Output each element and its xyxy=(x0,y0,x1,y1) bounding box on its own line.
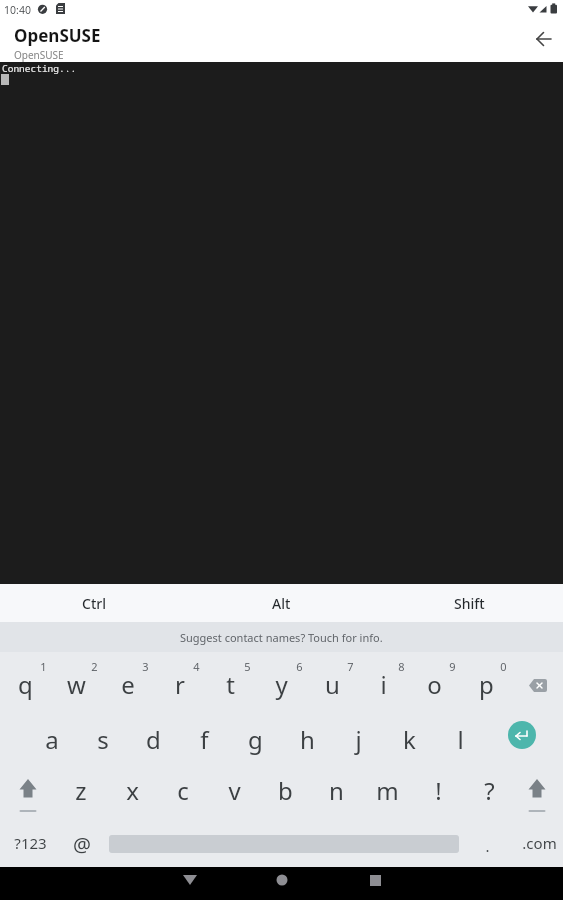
staticText: y xyxy=(275,668,288,701)
staticText: z xyxy=(75,774,87,807)
button[interactable]: z xyxy=(56,764,106,816)
staticText: 9 xyxy=(449,659,456,674)
button[interactable]: v xyxy=(209,764,259,816)
staticText: u xyxy=(325,668,340,701)
staticText: o xyxy=(427,668,442,701)
button[interactable]: e xyxy=(102,658,153,710)
staticText: n xyxy=(329,774,344,807)
staticText: f xyxy=(200,723,209,756)
button[interactable]: y xyxy=(256,658,307,710)
staticText: p xyxy=(479,668,494,701)
staticText: Suggest contact names? Touch for info. xyxy=(180,630,383,645)
button[interactable]: . xyxy=(472,826,502,866)
button[interactable]: l xyxy=(435,713,486,765)
staticText: 2 xyxy=(91,659,98,674)
button[interactable]: j xyxy=(333,713,384,765)
button[interactable]: u xyxy=(307,658,358,710)
staticText: ?123 xyxy=(14,833,47,853)
button[interactable]: c xyxy=(158,764,208,816)
staticText: 6 xyxy=(296,659,303,674)
staticText: 3 xyxy=(142,659,149,674)
button[interactable]: n xyxy=(311,764,361,816)
button[interactable]: Suggest contact names? Touch for info. xyxy=(0,622,563,652)
staticText: c xyxy=(177,774,189,807)
button[interactable] xyxy=(512,766,562,814)
staticText: 7 xyxy=(347,659,354,674)
staticText: d xyxy=(146,723,161,756)
staticText: 5 xyxy=(244,659,251,674)
button[interactable] xyxy=(258,867,306,893)
button[interactable]: @ xyxy=(57,819,107,869)
staticText: j xyxy=(355,723,362,756)
staticText: . xyxy=(485,836,490,856)
staticText: x xyxy=(126,774,139,807)
button[interactable]: t xyxy=(205,658,256,710)
staticText: 1 xyxy=(40,659,47,674)
button[interactable]: i xyxy=(358,658,409,710)
button[interactable]: s xyxy=(77,713,128,765)
staticText: 8 xyxy=(398,659,405,674)
staticText: w xyxy=(67,668,86,701)
button[interactable]: Shift xyxy=(375,584,563,622)
staticText: OpenSUSE xyxy=(14,48,64,62)
staticText: ? xyxy=(484,774,495,807)
button[interactable] xyxy=(166,867,214,893)
staticText: Shift xyxy=(454,594,485,613)
staticText: m xyxy=(376,774,399,807)
button[interactable]: h xyxy=(282,713,333,765)
staticText: Ctrl xyxy=(82,594,106,613)
staticText: k xyxy=(403,723,416,756)
button[interactable]: d xyxy=(128,713,179,765)
staticText: v xyxy=(228,774,241,807)
staticText: Connecting... xyxy=(2,62,77,75)
staticText: s xyxy=(97,723,109,756)
staticText: e xyxy=(121,668,135,701)
button[interactable] xyxy=(508,721,536,749)
button[interactable] xyxy=(528,23,560,55)
button[interactable]: g xyxy=(230,713,281,765)
staticText: OpenSUSE xyxy=(14,24,101,47)
staticText: a xyxy=(45,723,59,756)
staticText: t xyxy=(226,668,235,701)
button[interactable]: .com xyxy=(512,818,563,868)
button[interactable]: r xyxy=(154,658,205,710)
staticText: b xyxy=(278,774,293,807)
button[interactable]: Ctrl xyxy=(0,584,187,622)
staticText: ! xyxy=(435,774,442,807)
staticText: Alt xyxy=(272,594,291,613)
button[interactable]: k xyxy=(384,713,435,765)
staticText: 4 xyxy=(193,659,200,674)
button[interactable]: a xyxy=(26,713,77,765)
button[interactable]: b xyxy=(260,764,310,816)
button[interactable] xyxy=(351,867,399,893)
button[interactable] xyxy=(512,661,563,709)
staticText: .com xyxy=(522,833,557,853)
staticText: @ xyxy=(73,831,91,858)
button[interactable]: Alt xyxy=(187,584,375,622)
staticText: g xyxy=(248,723,263,756)
button[interactable]: ? xyxy=(464,764,514,816)
button[interactable]: m xyxy=(362,764,412,816)
button[interactable]: f xyxy=(179,713,230,765)
staticText: i xyxy=(380,668,387,701)
staticText: r xyxy=(175,668,185,701)
staticText: l xyxy=(457,723,464,756)
button[interactable]: x xyxy=(107,764,157,816)
button[interactable]: p xyxy=(461,658,512,710)
staticText: q xyxy=(18,668,33,701)
staticText: h xyxy=(300,723,315,756)
button[interactable]: ?123 xyxy=(0,818,60,868)
button[interactable] xyxy=(3,766,53,814)
staticText: 10:40 xyxy=(4,3,31,17)
button[interactable]: w xyxy=(51,658,102,710)
button[interactable]: q xyxy=(0,658,51,710)
staticText: 0 xyxy=(500,659,507,674)
button[interactable]: ! xyxy=(413,764,463,816)
button[interactable]: o xyxy=(409,658,460,710)
